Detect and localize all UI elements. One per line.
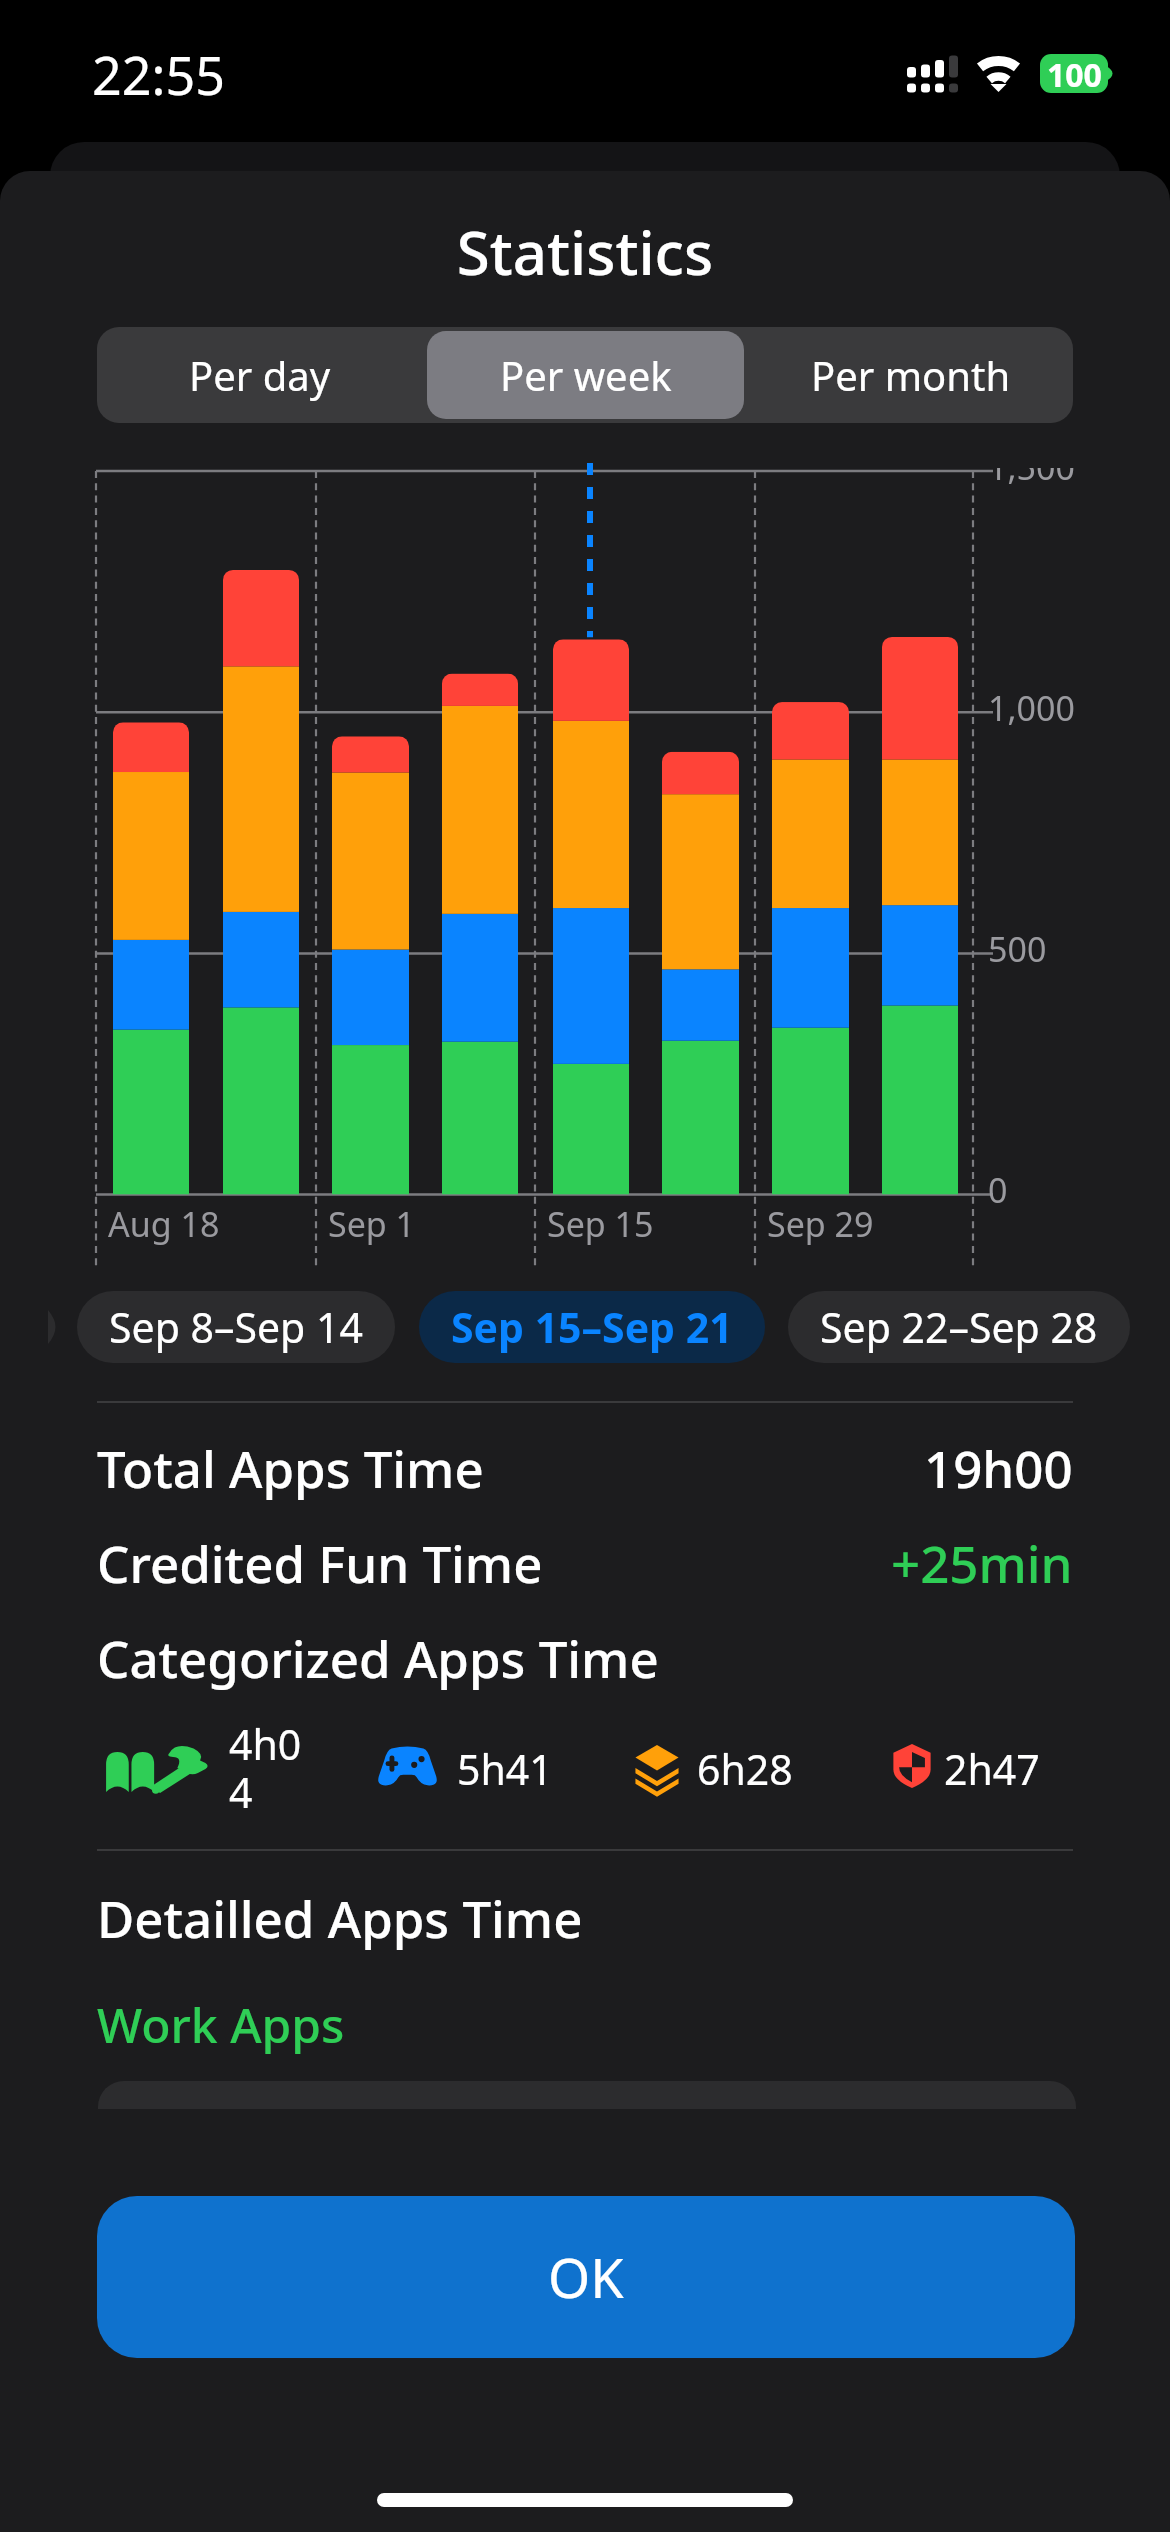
staticText: Categorized Apps Time	[97, 1623, 659, 1692]
staticText: Total Apps Time	[97, 1433, 484, 1502]
button[interactable]: Per month	[752, 331, 1069, 419]
staticText: Sep 15	[547, 1201, 654, 1247]
button[interactable]: Per day	[101, 331, 419, 419]
button[interactable]: Sep 15–Sep 21	[419, 1291, 765, 1363]
button[interactable]: OK	[97, 2196, 1075, 2358]
button[interactable]: Sep 8–Sep 14	[77, 1291, 395, 1363]
staticText: Per month	[811, 348, 1011, 402]
staticText: 500	[988, 926, 1047, 972]
staticText: Credited Fun Time	[97, 1528, 543, 1597]
staticText: 0	[988, 1167, 1008, 1213]
staticText: Per week	[500, 348, 672, 402]
staticText: Detailled Apps Time	[97, 1883, 583, 1952]
staticText: Sep 1	[328, 1201, 416, 1247]
button[interactable]: Sep 22–Sep 28	[788, 1291, 1130, 1363]
staticText: Sep 15–Sep 21	[451, 1299, 733, 1355]
staticText: 100	[1047, 54, 1102, 92]
staticText: Sep 8–Sep 14	[109, 1299, 363, 1355]
staticText: Sep 29	[767, 1201, 874, 1247]
staticText: 5h41	[457, 1741, 553, 1797]
staticText: 22:55	[92, 39, 225, 110]
staticText: +25min	[891, 1528, 1073, 1597]
staticText: 1,500	[988, 444, 1075, 490]
staticText: Work Apps	[97, 1992, 345, 2057]
staticText: OK	[548, 2240, 624, 2314]
staticText: 2h47	[944, 1741, 1040, 1797]
staticText: 1,000	[988, 685, 1075, 731]
staticText: Aug 18	[108, 1201, 220, 1247]
staticText: Statistics	[0, 211, 1170, 293]
button[interactable]: Per week	[427, 331, 744, 419]
staticText: Sep 22–Sep 28	[820, 1299, 1098, 1355]
staticText: 6h28	[697, 1741, 793, 1797]
staticText: Per day	[189, 348, 331, 402]
staticText: 19h00	[924, 1433, 1073, 1502]
staticText: 4h0 4	[229, 1716, 302, 1820]
